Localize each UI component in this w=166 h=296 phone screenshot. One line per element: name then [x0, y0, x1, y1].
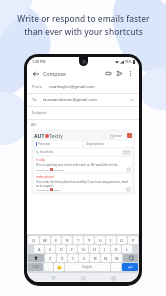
- button[interactable]: Personal: [34, 141, 82, 147]
- button[interactable]: order-placed: [34, 174, 132, 192]
- button[interactable]: Key: [28, 263, 43, 271]
- button[interactable]: L: [122, 245, 132, 253]
- staticText: C: [72, 256, 75, 261]
- button[interactable]: Q: [28, 236, 39, 244]
- staticText: U: [99, 238, 102, 243]
- staticText: noahtaylor@gmail.com: [49, 84, 95, 90]
- staticText: than ever with your shortcuts: [24, 26, 143, 37]
- staticText: P: [132, 238, 135, 243]
- button[interactable]: Home: [79, 274, 87, 282]
- staticText: .: [115, 265, 117, 270]
- button[interactable]: /r-ship: [34, 157, 132, 172]
- staticText: W: [43, 238, 47, 243]
- button[interactable]: To: [27, 94, 139, 106]
- button[interactable]: M: [112, 254, 122, 262]
- staticText: 1:30 PM: [32, 59, 46, 64]
- staticText: Q: [32, 238, 36, 243]
- staticText: Created by: [36, 168, 49, 171]
- button[interactable]: .: [111, 263, 121, 271]
- staticText: #5!: [31, 122, 37, 127]
- button[interactable]: H: [89, 245, 99, 253]
- staticText: D: [60, 247, 63, 252]
- button[interactable]: Attach file: [104, 69, 113, 78]
- staticText: AUT: [34, 132, 45, 139]
- staticText: L: [126, 247, 129, 252]
- button[interactable]: A: [34, 245, 44, 253]
- button[interactable]: Back: [49, 274, 57, 282]
- staticText: Z: [49, 256, 52, 261]
- button[interactable]: S: [45, 245, 55, 253]
- staticText: Subject: [32, 110, 47, 116]
- staticText: This is regarding your recent order with…: [36, 163, 120, 167]
- button[interactable]: N: [101, 254, 111, 262]
- button[interactable]: From: [27, 81, 139, 93]
- button[interactable]: I: [106, 236, 116, 244]
- staticText: V: [83, 256, 86, 261]
- button[interactable]: Recent apps: [109, 274, 117, 282]
- staticText: E: [55, 238, 58, 243]
- button[interactable]: Key: [28, 254, 44, 262]
- button[interactable]: U: [95, 236, 105, 244]
- button[interactable]: T: [73, 236, 83, 244]
- staticText: Screen: [114, 134, 123, 138]
- button[interactable]: Space: [65, 263, 110, 271]
- staticText: ?123: [32, 265, 39, 269]
- button[interactable]: Screen: [108, 133, 125, 139]
- button[interactable]: Enter: [122, 263, 138, 271]
- button[interactable]: E: [51, 236, 61, 244]
- staticText: X: [61, 256, 64, 261]
- staticText: launaanderson@gmail.com: [43, 97, 98, 103]
- staticText: Textly: [49, 132, 63, 139]
- button[interactable]: G: [78, 245, 88, 253]
- staticText: Compose: [43, 70, 67, 77]
- button[interactable]: ,: [44, 263, 53, 271]
- button[interactable]: P: [128, 236, 138, 244]
- button[interactable]: Back: [31, 69, 40, 78]
- button[interactable]: Z: [45, 254, 56, 262]
- button[interactable]: Key: [123, 254, 138, 262]
- staticText: B: [94, 256, 97, 261]
- staticText: English: [82, 265, 93, 269]
- staticText: O: [120, 238, 124, 243]
- staticText: shannon: [54, 168, 65, 171]
- staticText: T: [77, 238, 80, 243]
- button[interactable]: F: [67, 245, 77, 253]
- button[interactable]: B: [90, 254, 100, 262]
- button[interactable]: More options: [126, 69, 135, 78]
- staticText: M: [115, 256, 119, 261]
- button[interactable]: D: [56, 245, 66, 253]
- staticText: I: [110, 238, 112, 243]
- staticText: 🙂: [57, 265, 62, 270]
- button[interactable]: Organization: [84, 141, 132, 147]
- staticText: Personal: [38, 142, 50, 146]
- staticText: Write or respond to emails faster: [17, 13, 150, 24]
- button[interactable]: 🙂: [54, 263, 64, 271]
- button[interactable]: Subject: [27, 107, 139, 119]
- staticText: Y: [88, 238, 91, 243]
- staticText: nolan: [54, 188, 61, 191]
- staticText: From: [32, 84, 43, 90]
- staticText: F: [71, 247, 74, 252]
- staticText: Organization: [86, 142, 104, 146]
- button[interactable]: X: [57, 254, 67, 262]
- button[interactable]: Search list: [34, 149, 132, 155]
- staticText: S: [49, 247, 52, 252]
- button[interactable]: O: [117, 236, 127, 244]
- button[interactable]: J: [100, 245, 110, 253]
- staticText: 95%: [125, 60, 132, 64]
- staticText: Search list: [40, 150, 54, 154]
- staticText: H: [93, 247, 96, 252]
- button[interactable]: Profile: [127, 133, 132, 138]
- button[interactable]: V: [79, 254, 89, 262]
- staticText: G: [82, 247, 85, 252]
- staticText: ,: [48, 265, 50, 270]
- staticText: R: [66, 238, 69, 243]
- button[interactable]: W: [40, 236, 50, 244]
- button[interactable]: R: [62, 236, 72, 244]
- button[interactable]: Send: [115, 69, 124, 78]
- staticText: N: [104, 256, 108, 261]
- staticText: order-placed: [36, 175, 54, 179]
- button[interactable]: C: [68, 254, 78, 262]
- button[interactable]: K: [111, 245, 121, 253]
- button[interactable]: Y: [84, 236, 94, 244]
